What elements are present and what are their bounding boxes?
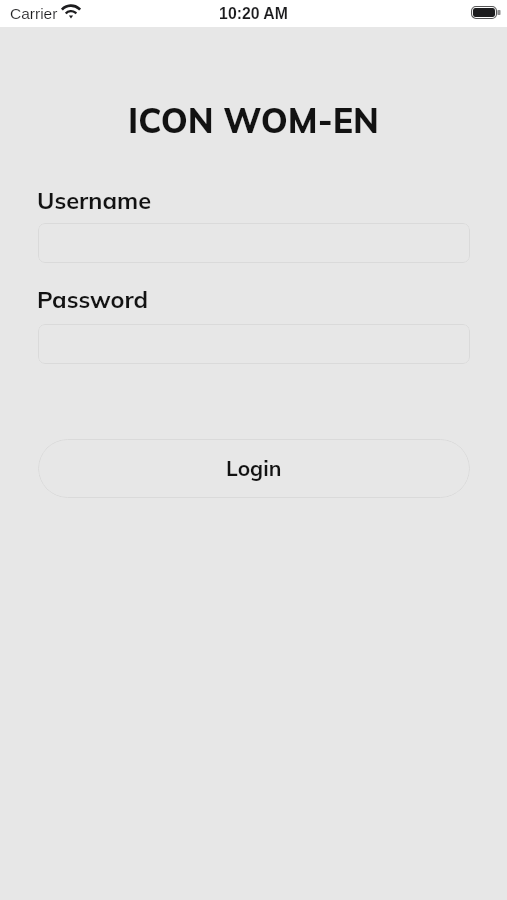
staticText: ICON WOM-EN [0, 99, 507, 142]
staticText: Carrier [10, 5, 58, 22]
staticText: Username [37, 185, 152, 214]
other: Battery [471, 6, 501, 19]
other: Wi-Fi [62, 5, 80, 18]
staticText: 10:20 AM [0, 5, 507, 23]
staticText: Login [226, 455, 282, 481]
button[interactable]: Login [38, 439, 470, 498]
staticText: Password [37, 284, 149, 313]
